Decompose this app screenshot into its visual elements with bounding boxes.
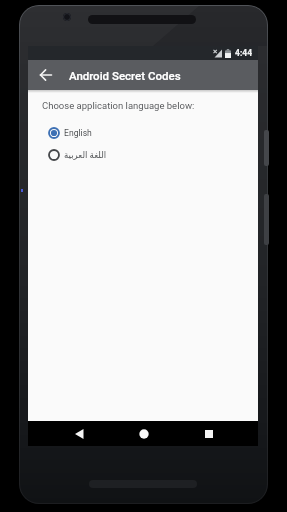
staticText: اللغة العربية xyxy=(64,150,107,160)
button[interactable]: English xyxy=(48,126,92,139)
button[interactable]: اللغة العربية xyxy=(48,148,107,161)
button[interactable] xyxy=(129,421,159,446)
staticText: Choose application language below: xyxy=(42,100,195,111)
staticText: Android Secret Codes xyxy=(69,69,181,82)
button[interactable] xyxy=(194,421,224,446)
button[interactable] xyxy=(64,421,94,446)
staticText: English xyxy=(64,128,92,138)
button[interactable] xyxy=(28,60,64,90)
staticText: 4:44 xyxy=(235,48,253,58)
